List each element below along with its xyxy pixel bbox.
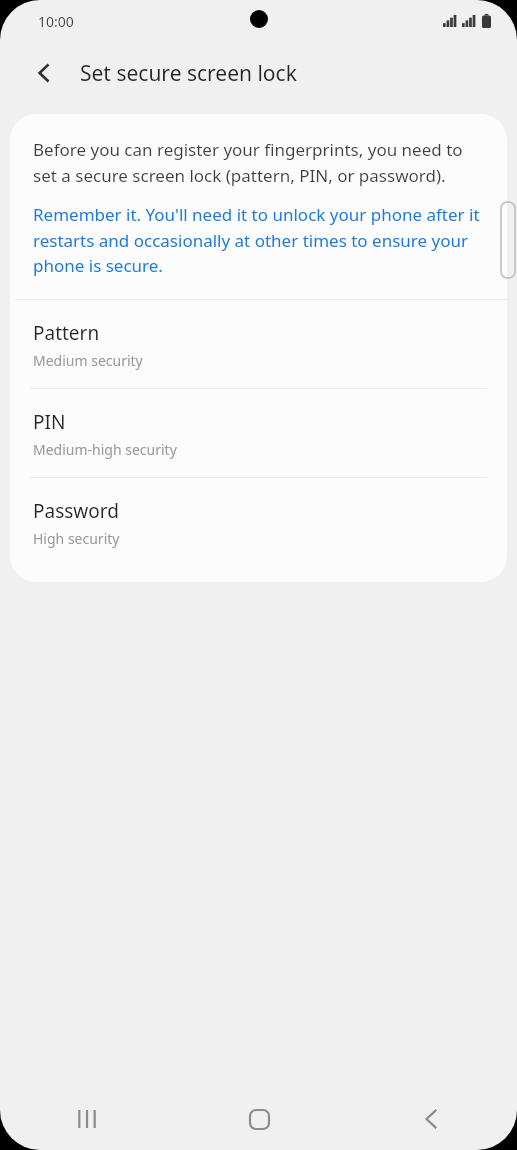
staticText: Before you can register your fingerprint…	[33, 138, 487, 187]
button[interactable]: Back	[22, 51, 66, 95]
button[interactable]: Back	[345, 1088, 517, 1150]
button[interactable]: Home	[173, 1088, 345, 1150]
button[interactable]: Recent apps	[0, 1088, 173, 1150]
staticText: Pattern	[33, 320, 100, 346]
staticText: PIN	[33, 409, 66, 435]
staticText: Medium security	[33, 351, 143, 370]
button[interactable]: PIN	[10, 389, 507, 477]
staticText: Remember it. You'll need it to unlock yo…	[33, 203, 487, 277]
button[interactable]: Password	[10, 478, 507, 566]
staticText: Set secure screen lock	[80, 59, 297, 88]
staticText: Medium-high security	[33, 440, 177, 459]
button[interactable]: Pattern	[10, 300, 507, 388]
staticText: 10:00	[38, 12, 74, 31]
staticText: High security	[33, 529, 120, 548]
staticText: Password	[33, 498, 119, 524]
